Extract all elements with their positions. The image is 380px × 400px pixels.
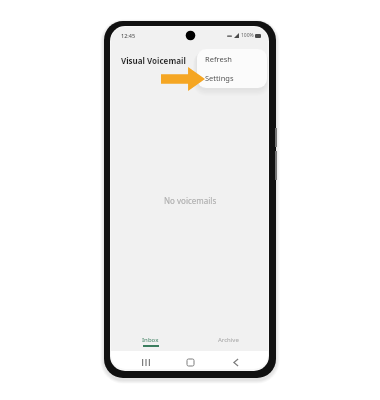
button[interactable]: Home — [179, 355, 201, 369]
staticText: Archive — [218, 336, 239, 344]
staticText: 12:45 — [121, 32, 136, 39]
staticText: Visual Voicemail — [121, 55, 186, 66]
button[interactable]: Refresh — [197, 51, 267, 67]
staticText: Settings — [205, 73, 234, 83]
button[interactable]: Settings — [197, 70, 267, 86]
button[interactable]: Back — [225, 355, 247, 369]
staticText: Refresh — [205, 54, 232, 64]
button[interactable]: Inbox — [111, 329, 189, 351]
button[interactable]: Recents — [135, 355, 157, 369]
staticText: No voicemails — [164, 195, 217, 206]
staticText: Inbox — [142, 336, 159, 344]
button[interactable]: Archive — [189, 329, 268, 351]
staticText: 100% — [241, 32, 254, 39]
